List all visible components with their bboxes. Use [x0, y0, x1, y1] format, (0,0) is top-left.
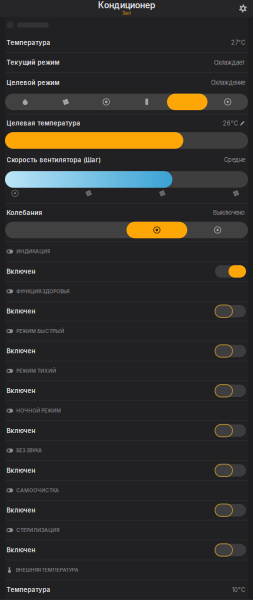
staticText: Выключено — [213, 209, 245, 216]
staticText: Включен — [6, 467, 35, 474]
staticText: Целевая температура — [6, 119, 80, 127]
staticText: Скорость вентилятора (Шаг) — [6, 156, 100, 164]
staticText: Включен — [6, 347, 35, 355]
staticText: Включен — [6, 268, 35, 275]
button[interactable]: Toggle — [215, 305, 246, 317]
staticText: ИНДИКАЦИЯ — [16, 248, 50, 254]
staticText: СТЕРИЛИЗАЦИЯ — [16, 527, 59, 533]
button[interactable]: Toggle — [215, 424, 246, 437]
staticText: 27°C — [231, 39, 245, 46]
button[interactable]: Option 3 — [126, 222, 187, 238]
staticText: САМООЧИСТКА — [16, 487, 59, 493]
button[interactable]: Toggle — [215, 385, 246, 397]
button[interactable]: Option 4 — [187, 222, 248, 238]
staticText: Включен — [6, 307, 35, 315]
staticText: Текущий режим — [6, 59, 59, 66]
staticText: Колебания — [6, 209, 42, 216]
staticText: НОЧНОЙ РЕЖИМ — [16, 408, 61, 414]
staticText: Температура — [6, 586, 50, 594]
staticText: Включен — [6, 427, 35, 434]
staticText: 26°C — [223, 120, 238, 127]
button[interactable]: Option 4 — [126, 94, 167, 110]
staticText: БЕЗ ЗВУКА — [16, 447, 42, 453]
button[interactable]: Option 3 — [86, 94, 126, 110]
staticText: Включен — [6, 506, 35, 514]
staticText: Охлаждает — [214, 59, 245, 66]
staticText: РЕЖИМ ТИХИЙ — [16, 368, 56, 374]
button[interactable]: Option 1 — [5, 94, 45, 110]
staticText: 10°C — [232, 586, 245, 593]
button[interactable]: Option 1 — [5, 222, 66, 238]
staticText: Температура — [6, 39, 50, 46]
staticText: ВНЕШНЯЯ ТЕМПЕРАТУРА — [16, 567, 79, 573]
button[interactable]: Option 6 — [207, 94, 248, 110]
button[interactable]: Option 2 — [66, 222, 127, 238]
staticText: Включен — [6, 387, 35, 395]
button[interactable]: Toggle — [215, 544, 246, 556]
staticText: РЕЖИМ БЫСТРЫЙ — [16, 328, 64, 334]
button[interactable]: Option 2 — [45, 94, 86, 110]
staticText: Охлаждение — [211, 79, 245, 86]
button[interactable]: Settings — [236, 1, 250, 15]
staticText: Средне — [224, 156, 245, 163]
staticText: Зал — [122, 10, 131, 16]
staticText: ФУНКЦИЯ ЗДОРОВЬЯ — [16, 288, 69, 294]
button[interactable]: Option 5 — [167, 94, 207, 110]
button[interactable]: Toggle — [215, 265, 246, 278]
button[interactable]: Toggle — [215, 504, 246, 516]
staticText: Целевой режим — [6, 79, 59, 86]
button[interactable]: Toggle — [215, 345, 246, 357]
button[interactable]: Toggle — [215, 464, 246, 477]
staticText: Кондиционер — [98, 0, 155, 10]
staticText: Включен — [6, 546, 35, 554]
